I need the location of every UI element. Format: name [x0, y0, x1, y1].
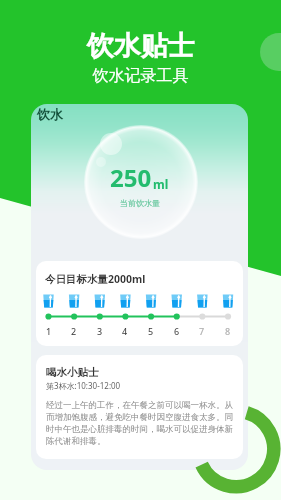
staticText: 8	[225, 325, 231, 337]
staticText: 4	[122, 325, 128, 337]
button[interactable]: 今日目标水量2000ml	[36, 261, 243, 346]
staticText: 7	[199, 325, 205, 337]
staticText: ml	[153, 176, 169, 192]
staticText: 喝水小贴士	[46, 366, 99, 379]
staticText: 当前饮水量	[120, 198, 160, 208]
staticText: 经过一上午的工作，在午餐之前可以喝一杯水。从而增加饱腹感，避免吃中餐时因空腹进食…	[46, 400, 233, 447]
staticText: 第3杯水:10:30-12:00	[46, 380, 121, 391]
staticText: 1	[46, 325, 52, 337]
staticText: 今日目标水量2000ml	[45, 272, 146, 286]
staticText: 饮水记录工具	[0, 66, 281, 86]
staticText: 2	[71, 325, 77, 337]
staticText: 饮水贴士	[0, 29, 281, 63]
staticText: 3	[97, 325, 103, 337]
staticText: 6	[174, 325, 180, 337]
staticText: 5	[148, 325, 154, 337]
staticText: 饮水	[37, 106, 63, 122]
button[interactable]: 喝水小贴士	[36, 355, 243, 459]
staticText: 250	[110, 161, 152, 194]
